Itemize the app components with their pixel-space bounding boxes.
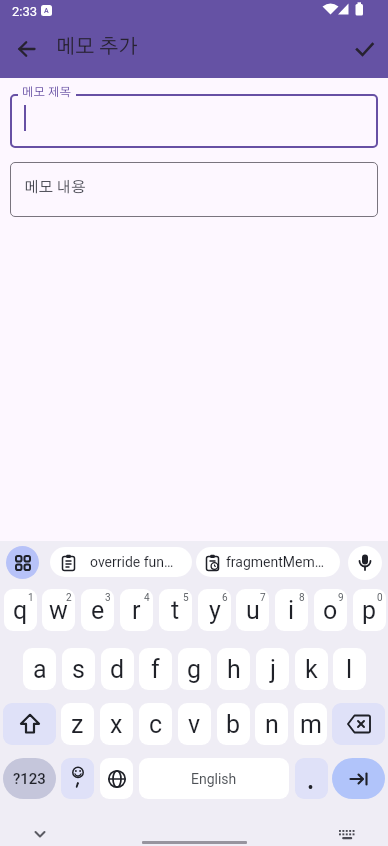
button[interactable]: o <box>314 589 347 631</box>
staticText: n <box>265 710 279 739</box>
staticText: 8 <box>299 592 305 604</box>
button[interactable] <box>345 30 383 68</box>
staticText: 7 <box>260 592 266 604</box>
button[interactable]: l <box>333 648 366 690</box>
button[interactable] <box>100 758 133 799</box>
staticText: j <box>270 655 276 684</box>
staticText: 0 <box>377 592 383 604</box>
staticText: l <box>346 655 353 684</box>
button[interactable] <box>334 824 360 844</box>
staticText: e <box>91 596 105 625</box>
staticText: 5 <box>183 592 189 604</box>
button[interactable] <box>348 546 382 580</box>
staticText: m <box>300 710 322 739</box>
button[interactable]: y <box>198 589 231 631</box>
button[interactable]: fragmentMem… <box>196 547 340 577</box>
button[interactable]: i <box>275 589 308 631</box>
button[interactable] <box>8 30 46 68</box>
button[interactable] <box>10 94 378 148</box>
button[interactable] <box>6 546 39 579</box>
button[interactable] <box>26 822 54 846</box>
staticText: 2 <box>66 592 72 604</box>
staticText: English <box>191 771 237 787</box>
staticText: g <box>187 655 202 684</box>
staticText: 9 <box>338 592 344 604</box>
button[interactable] <box>3 703 56 745</box>
staticText: 2:33 <box>12 4 38 19</box>
staticText: ?123 <box>13 770 46 788</box>
button[interactable]: g <box>178 648 211 690</box>
staticText: u <box>246 596 260 625</box>
button[interactable]: e <box>81 589 114 631</box>
staticText: w <box>49 596 68 625</box>
button[interactable] <box>332 703 385 745</box>
staticText: p <box>362 596 377 625</box>
button[interactable]: u <box>236 589 269 631</box>
staticText: d <box>110 655 125 684</box>
button[interactable]: z <box>61 703 94 745</box>
button[interactable]: w <box>42 589 75 631</box>
button[interactable]: ?123 <box>3 758 56 799</box>
staticText: c <box>149 710 163 739</box>
button[interactable]: t <box>159 589 192 631</box>
button[interactable]: p <box>353 589 386 631</box>
staticText: r <box>132 596 141 625</box>
button[interactable]: a <box>23 648 56 690</box>
button[interactable]: m <box>294 703 327 745</box>
button[interactable]: q <box>4 589 37 631</box>
button[interactable] <box>295 758 328 799</box>
staticText: 1 <box>28 592 34 604</box>
button[interactable]: f <box>139 648 172 690</box>
staticText: 6 <box>222 592 228 604</box>
staticText: fragmentMem… <box>226 554 325 570</box>
button[interactable]: 메모 내용 <box>10 162 378 217</box>
staticText: A <box>44 7 49 15</box>
staticText: o <box>323 596 338 625</box>
staticText: i <box>288 596 295 625</box>
button[interactable] <box>332 758 385 799</box>
staticText: s <box>72 655 85 684</box>
staticText: 4 <box>144 592 150 604</box>
staticText: f <box>151 655 160 684</box>
button[interactable]: j <box>256 648 289 690</box>
staticText: 메모 추가 <box>56 37 138 57</box>
button[interactable]: override fun… <box>50 547 192 577</box>
staticText: 3 <box>105 592 111 604</box>
staticText: q <box>13 596 28 625</box>
staticText: z <box>71 710 84 739</box>
button[interactable] <box>61 758 94 799</box>
staticText: t <box>171 596 180 625</box>
staticText: x <box>110 710 123 739</box>
button[interactable]: h <box>217 648 250 690</box>
button[interactable]: v <box>178 703 211 745</box>
staticText: a <box>33 655 47 684</box>
button[interactable]: k <box>295 648 328 690</box>
button[interactable]: x <box>100 703 133 745</box>
button[interactable]: r <box>120 589 153 631</box>
button[interactable]: c <box>139 703 172 745</box>
staticText: v <box>188 710 201 739</box>
button[interactable]: d <box>101 648 134 690</box>
button[interactable]: b <box>217 703 250 745</box>
staticText: k <box>305 655 318 684</box>
button[interactable]: s <box>62 648 95 690</box>
button[interactable]: English <box>139 758 289 799</box>
button[interactable]: n <box>255 703 288 745</box>
staticText: 메모 내용 <box>24 180 86 195</box>
staticText: 메모 제목 <box>22 86 72 98</box>
staticText: b <box>226 710 241 739</box>
staticText: override fun… <box>90 554 174 570</box>
staticText: h <box>227 655 241 684</box>
staticText: y <box>209 596 221 625</box>
